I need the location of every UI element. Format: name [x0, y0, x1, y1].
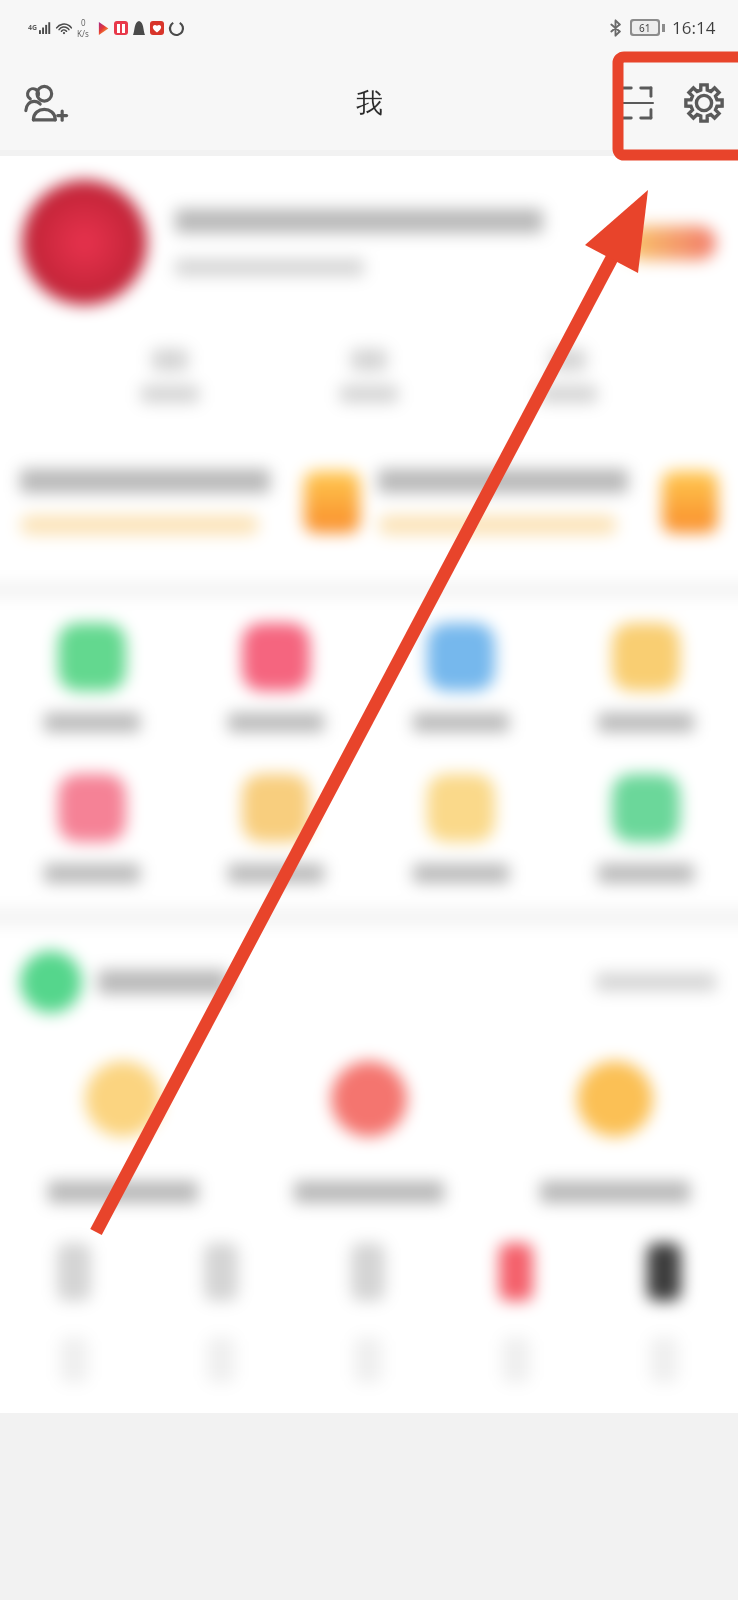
staticText: 16:14 — [672, 16, 716, 39]
button[interactable] — [0, 774, 184, 883]
button[interactable] — [246, 1061, 492, 1203]
button[interactable]: Settings — [670, 69, 738, 137]
button[interactable] — [0, 1061, 246, 1203]
staticText: 4G — [28, 23, 38, 33]
staticText: K/s — [77, 28, 89, 39]
button[interactable] — [184, 623, 368, 732]
button[interactable] — [368, 774, 553, 883]
button[interactable]: Scan QR code — [602, 69, 670, 137]
button[interactable]: Add friends — [10, 67, 82, 139]
button[interactable] — [492, 1061, 738, 1203]
button[interactable] — [184, 774, 368, 883]
button[interactable] — [0, 623, 184, 732]
staticText: 0 — [81, 17, 86, 28]
staticText: 61 — [639, 21, 651, 34]
button[interactable] — [553, 623, 738, 732]
button[interactable] — [553, 774, 738, 883]
button[interactable] — [368, 623, 553, 732]
staticText: 我 — [356, 86, 383, 120]
